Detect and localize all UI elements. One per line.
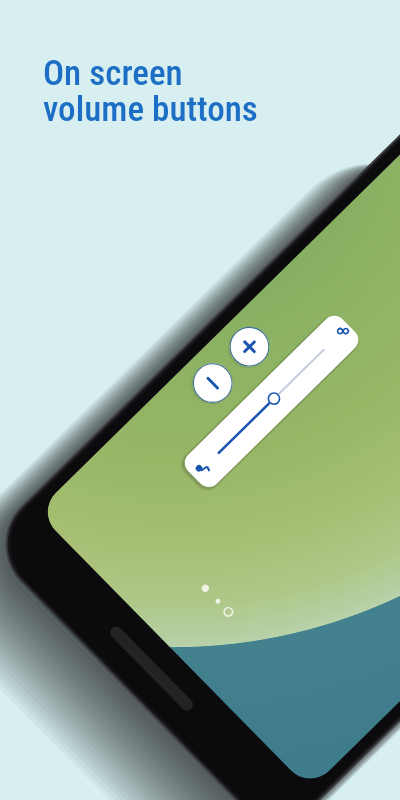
staticText: On screen volume buttons	[43, 53, 258, 129]
